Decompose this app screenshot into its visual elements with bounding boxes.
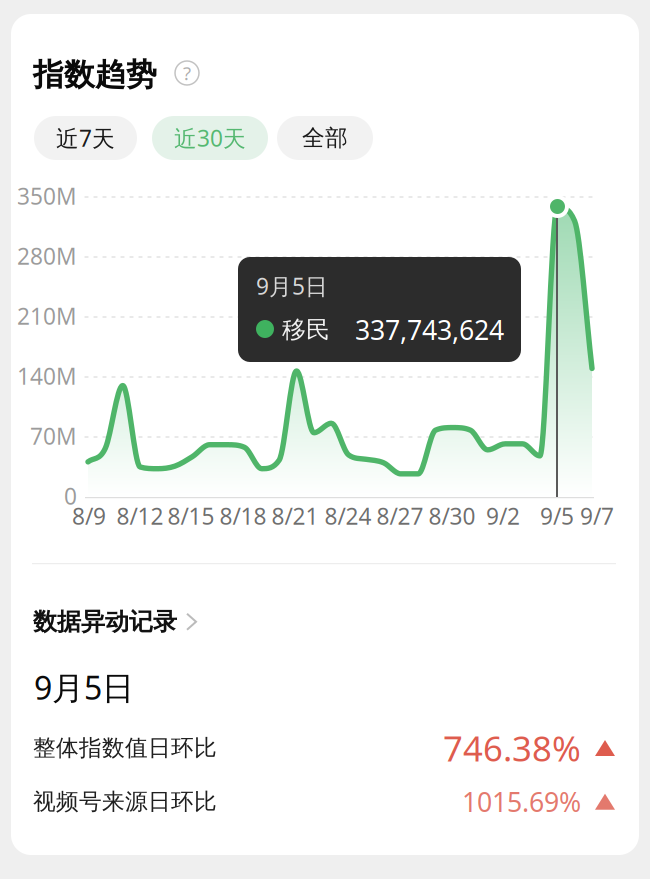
staticText: 140M	[17, 361, 77, 391]
button[interactable]: 近7天	[34, 116, 137, 160]
staticText: 近30天	[174, 123, 246, 153]
staticText: 8/12	[116, 501, 163, 531]
staticText: 8/18	[219, 501, 266, 531]
staticText: 8/27	[376, 501, 423, 531]
staticText: 移民	[282, 315, 330, 344]
button[interactable]: 近30天	[152, 116, 268, 160]
staticText: 0	[64, 481, 77, 511]
staticText: 1015.69%	[462, 784, 581, 819]
staticText: 全部	[302, 124, 348, 152]
staticText: 近7天	[56, 123, 115, 153]
staticText: 9/7	[580, 501, 614, 531]
staticText: 280M	[17, 241, 77, 271]
staticText: 70M	[30, 421, 77, 451]
button[interactable]: 全部	[277, 116, 373, 160]
staticText: 8/15	[167, 501, 214, 531]
staticText: 337,743,624	[355, 312, 504, 347]
staticText: 9/5	[540, 501, 574, 531]
staticText: 9/2	[486, 501, 520, 531]
staticText: 指数趋势	[33, 56, 157, 94]
staticText: 746.38%	[443, 725, 581, 771]
staticText: 8/30	[428, 501, 475, 531]
staticText: 数据异动记录	[33, 607, 177, 636]
button[interactable]: 数据异动记录	[33, 607, 196, 636]
staticText: 9月5日	[34, 666, 134, 708]
staticText: 8/21	[271, 501, 318, 531]
button[interactable]: 指标说明	[175, 61, 199, 85]
staticText: 210M	[17, 301, 77, 331]
staticText: 8/24	[324, 501, 371, 531]
staticText: 整体指数值日环比	[33, 734, 217, 762]
staticText: 8/9	[72, 501, 106, 531]
staticText: 350M	[17, 181, 77, 211]
staticText: 9月5日	[256, 271, 328, 301]
staticText: 视频号来源日环比	[33, 788, 217, 816]
staticText: ?	[183, 61, 191, 85]
